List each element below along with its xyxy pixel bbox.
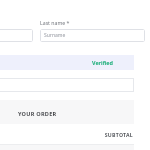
button[interactable]: Verified [0, 55, 134, 70]
staticText: Verified [92, 59, 113, 66]
staticText: YOUR ORDER [18, 110, 57, 118]
button[interactable] [0, 29, 33, 42]
button[interactable] [0, 78, 134, 92]
staticText: Last name * [40, 19, 70, 26]
button[interactable]: Surname [40, 29, 145, 42]
staticText: Surname [44, 32, 66, 39]
staticText: SUBTOTAL [104, 131, 133, 138]
